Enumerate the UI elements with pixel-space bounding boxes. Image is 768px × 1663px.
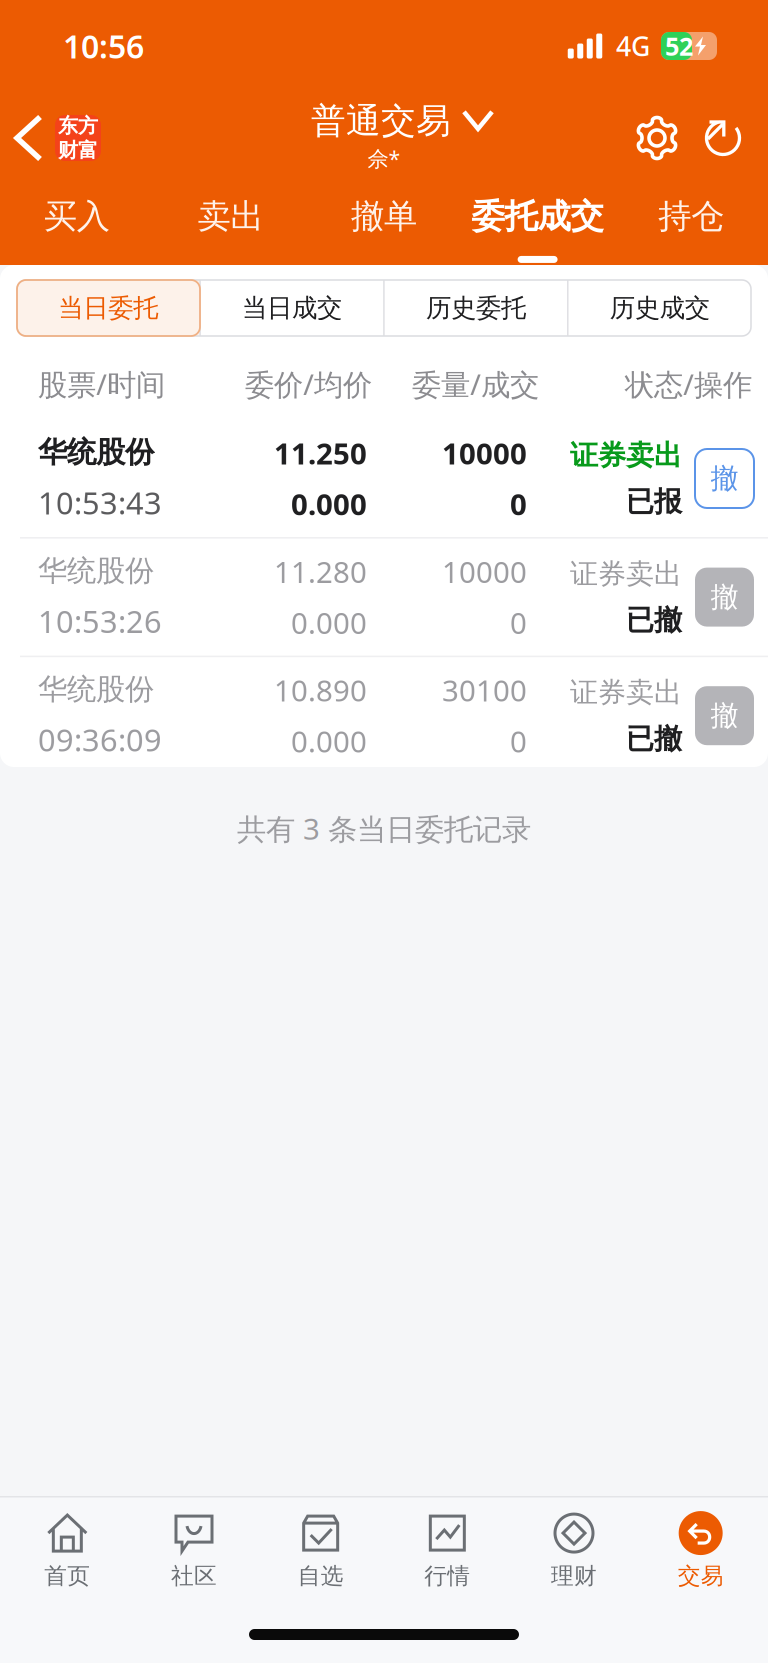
- staticText: 共有 3 条当日委托记录: [237, 809, 531, 848]
- button[interactable]: 委托成交: [461, 184, 614, 265]
- button[interactable]: Back: [0, 99, 113, 177]
- button[interactable]: 首页: [4, 1509, 131, 1591]
- staticText: 股票/时间: [38, 364, 165, 403]
- staticText: 0: [510, 484, 527, 523]
- staticText: 当日成交: [242, 292, 342, 323]
- staticText: 自选: [298, 1562, 344, 1590]
- button[interactable]: 历史委托: [385, 280, 567, 336]
- staticText: 卖出: [197, 196, 263, 237]
- staticText: 撤: [710, 580, 738, 614]
- staticText: 11.280: [274, 552, 367, 591]
- button[interactable]: Refresh: [690, 101, 756, 175]
- staticText: 财富: [58, 138, 98, 163]
- button[interactable]: 撤: [695, 449, 754, 508]
- button[interactable]: 当日委托: [17, 280, 199, 336]
- staticText: 持仓: [658, 196, 724, 237]
- button[interactable]: 撤单: [307, 184, 461, 265]
- staticText: 证券卖出: [570, 675, 682, 710]
- staticText: 11.250: [274, 433, 367, 472]
- staticText: 委托成交: [472, 196, 604, 237]
- staticText: 0: [510, 603, 527, 642]
- staticText: 撤单: [351, 196, 417, 237]
- button[interactable]: 社区: [131, 1509, 257, 1591]
- staticText: 社区: [171, 1562, 217, 1590]
- staticText: 历史委托: [426, 292, 526, 323]
- staticText: 东方: [58, 113, 98, 138]
- staticText: 理财: [551, 1562, 597, 1590]
- staticText: 10:53:43: [38, 482, 162, 523]
- button[interactable]: 行情: [384, 1509, 511, 1591]
- button[interactable]: 历史成交: [569, 280, 751, 336]
- staticText: 普通交易: [311, 99, 451, 142]
- staticText: 状态/操作: [625, 364, 752, 403]
- staticText: 已报: [626, 484, 682, 519]
- staticText: 华统股份: [38, 553, 154, 589]
- staticText: 10:53:26: [38, 601, 162, 641]
- staticText: 委量/成交: [412, 364, 539, 403]
- staticText: 证券卖出: [570, 438, 682, 472]
- staticText: 0.000: [291, 484, 367, 523]
- button[interactable]: 理财: [511, 1509, 637, 1591]
- button[interactable]: 买入: [0, 184, 154, 265]
- button[interactable]: 自选: [257, 1509, 384, 1591]
- staticText: 0: [510, 722, 527, 761]
- button[interactable]: Settings: [624, 101, 690, 175]
- staticText: 10000: [442, 552, 527, 591]
- staticText: 撤: [710, 461, 738, 496]
- staticText: 10:56: [63, 25, 144, 67]
- staticText: 交易: [678, 1562, 724, 1590]
- staticText: 0.000: [291, 603, 367, 642]
- staticText: 证券卖出: [570, 557, 682, 591]
- staticText: 52: [665, 29, 693, 63]
- staticText: 华统股份: [38, 671, 154, 707]
- staticText: 撤: [710, 698, 738, 733]
- staticText: 0.000: [291, 722, 367, 761]
- staticText: 买入: [44, 196, 110, 237]
- button[interactable]: 卖出: [154, 184, 307, 265]
- staticText: 4G: [616, 28, 650, 64]
- staticText: 当日委托: [58, 292, 158, 323]
- button[interactable]: 撤: [695, 568, 754, 627]
- staticText: 09:36:09: [38, 719, 162, 760]
- button[interactable]: 持仓: [614, 184, 768, 265]
- staticText: 行情: [424, 1562, 470, 1590]
- staticText: 已撤: [626, 722, 682, 756]
- staticText: 已撤: [626, 603, 682, 637]
- staticText: 佘*: [367, 144, 400, 172]
- staticText: 历史成交: [610, 292, 710, 323]
- button[interactable]: 撤: [695, 686, 754, 745]
- button[interactable]: 当日成交: [201, 280, 383, 336]
- staticText: 华统股份: [38, 434, 154, 470]
- staticText: 30100: [442, 671, 527, 710]
- staticText: 首页: [44, 1562, 90, 1590]
- staticText: 10000: [442, 433, 527, 472]
- staticText: 委价/均价: [245, 364, 372, 403]
- button[interactable]: 交易: [637, 1509, 764, 1591]
- staticText: 10.890: [274, 671, 367, 710]
